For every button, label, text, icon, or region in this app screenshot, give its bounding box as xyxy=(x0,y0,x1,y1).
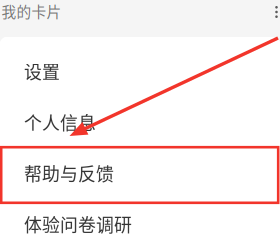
staticText: 体验问卷调研 xyxy=(24,211,132,235)
staticText: 个人信息 xyxy=(24,109,96,135)
button[interactable]: 帮助与反馈 xyxy=(0,147,280,198)
button[interactable]: 体验问卷调研 xyxy=(0,198,280,235)
button[interactable]: More options xyxy=(262,0,280,23)
button[interactable]: 个人信息 xyxy=(0,96,280,147)
staticText: 设置 xyxy=(24,58,60,84)
staticText: 我的卡片 xyxy=(1,0,61,22)
button[interactable]: 设置 xyxy=(0,45,280,96)
staticText: 帮助与反馈 xyxy=(24,160,114,186)
